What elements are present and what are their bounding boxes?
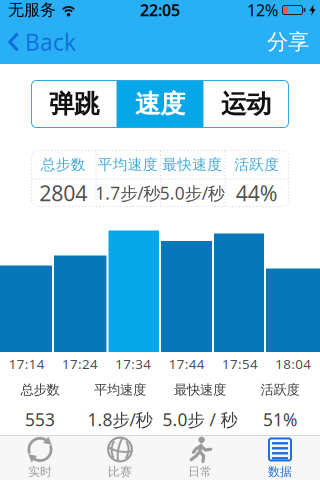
staticText: 活跃度 [260, 382, 299, 398]
staticText: 总步数 [20, 382, 59, 398]
button[interactable]: 运动 [203, 80, 289, 128]
staticText: 数据 [268, 464, 292, 479]
button[interactable]: 速度 [117, 80, 203, 128]
staticText: 17:44 [169, 355, 205, 373]
button[interactable]: Back [0, 27, 76, 57]
staticText: 总步数 [41, 155, 86, 173]
staticText: 无服务 [8, 0, 56, 20]
staticText: 5.0步/秒 [160, 181, 225, 204]
button[interactable]: 实时 [0, 436, 80, 480]
staticText: 比赛 [108, 464, 132, 479]
staticText: 运动 [221, 88, 271, 119]
staticText: 最快速度 [174, 382, 226, 398]
staticText: 17:54 [222, 355, 258, 373]
button[interactable]: 数据 [240, 436, 320, 480]
staticText: 44% [236, 179, 278, 207]
staticText: 平均速度 [98, 155, 158, 173]
staticText: 12% [247, 0, 278, 21]
staticText: 最快速度 [162, 155, 222, 173]
staticText: Back [25, 27, 76, 57]
staticText: 速度 [135, 88, 185, 119]
button[interactable]: 日常 [160, 436, 240, 480]
staticText: 日常 [188, 464, 212, 479]
staticText: 2804 [39, 179, 87, 207]
button[interactable]: 分享 [267, 29, 320, 55]
staticText: 活跃度 [234, 155, 279, 173]
staticText: 平均速度 [94, 382, 146, 398]
staticText: 实时 [28, 464, 52, 479]
staticText: 1.8步/秒 [87, 408, 152, 431]
staticText: 51% [263, 408, 297, 431]
staticText: 17:24 [62, 355, 98, 373]
staticText: 22:05 [140, 0, 180, 21]
button[interactable]: 弹跳 [31, 80, 117, 128]
button[interactable]: 比赛 [80, 436, 160, 480]
staticText: 18:04 [275, 355, 311, 373]
staticText: 分享 [267, 29, 309, 55]
staticText: 弹跳 [49, 88, 99, 119]
staticText: 5.0步 / 秒 [162, 408, 237, 431]
staticText: 553 [25, 408, 55, 431]
staticText: 1.7步/秒 [95, 181, 160, 204]
staticText: 17:14 [9, 355, 45, 373]
staticText: 17:34 [115, 355, 151, 373]
